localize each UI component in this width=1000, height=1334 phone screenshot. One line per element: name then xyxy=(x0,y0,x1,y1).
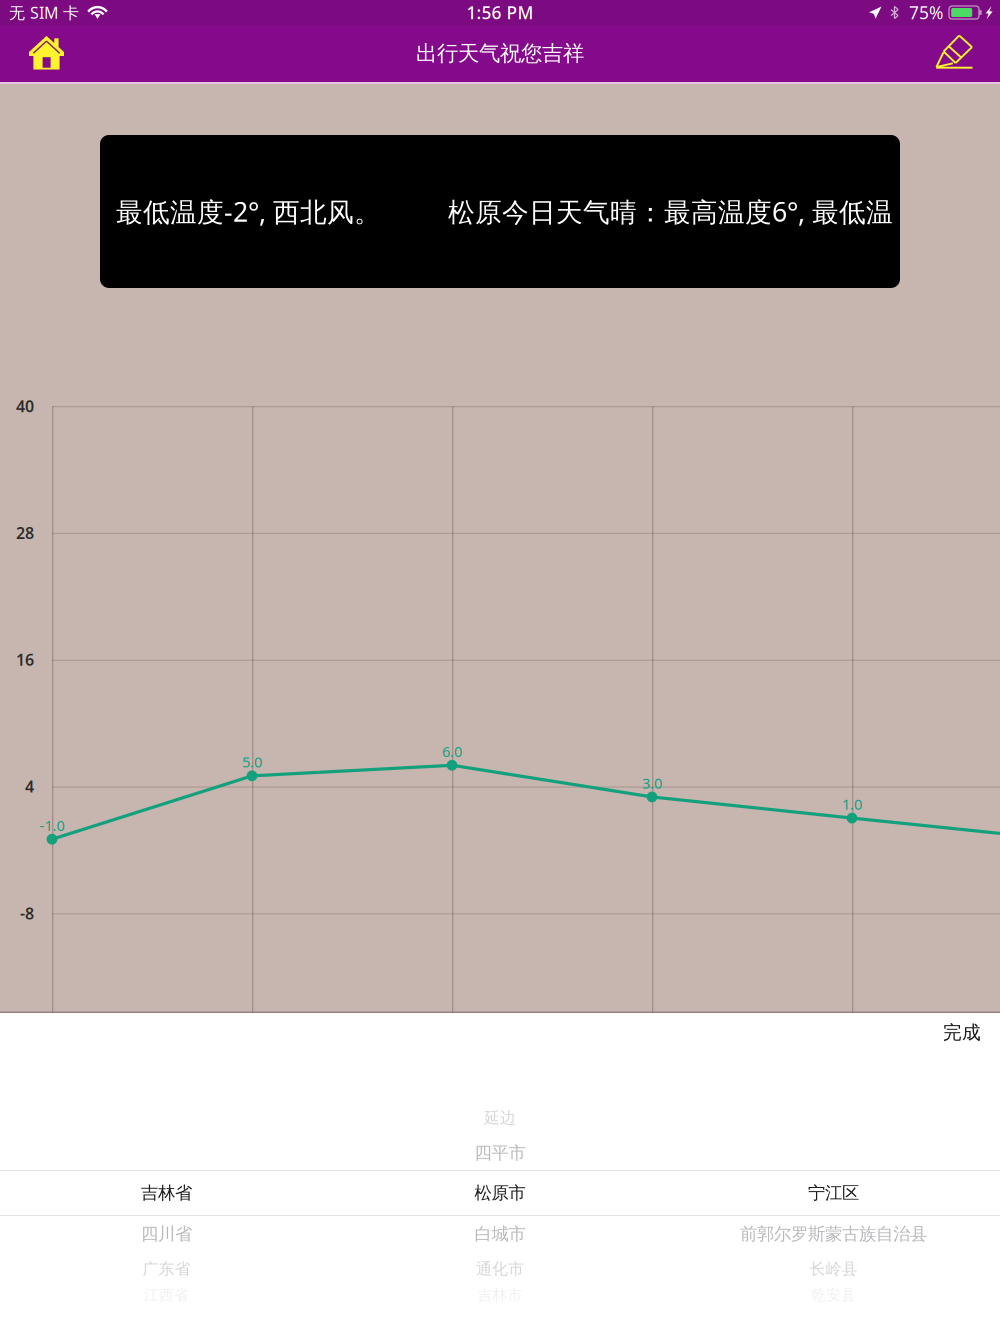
staticText: 无 SIM 卡 xyxy=(9,2,79,23)
staticText: 松原市 xyxy=(474,1182,525,1204)
staticText: 1.0 xyxy=(842,794,862,814)
staticText: 江西省 xyxy=(144,1286,189,1304)
staticText: 四川省 xyxy=(141,1223,192,1245)
staticText: 1:56 PM xyxy=(466,1,533,24)
staticText: 乾安县 xyxy=(811,1286,856,1304)
staticText: 完成 xyxy=(943,1021,981,1044)
staticText: 4 xyxy=(25,776,34,797)
staticText: 广东省 xyxy=(142,1259,190,1279)
staticText: 16 xyxy=(16,649,34,670)
staticText: 白城市 xyxy=(474,1223,525,1245)
staticText: 通化市 xyxy=(476,1259,524,1279)
staticText: 75% xyxy=(909,1,943,24)
staticText: 松原今日天气晴：最高温度6°, 最低温 xyxy=(448,194,893,229)
staticText: 吉林市 xyxy=(477,1286,522,1304)
staticText: 长岭县 xyxy=(809,1259,857,1279)
staticText: 5.0 xyxy=(242,752,262,772)
staticText: 6.0 xyxy=(442,741,462,761)
staticText: 出行天气祝您吉祥 xyxy=(416,40,584,67)
staticText: 40 xyxy=(16,395,34,417)
staticText: 四平市 xyxy=(474,1142,525,1164)
staticText: -8 xyxy=(20,903,34,924)
staticText: 宁江区 xyxy=(808,1182,859,1204)
staticText: 28 xyxy=(16,522,34,543)
button[interactable]: Edit xyxy=(922,28,999,78)
staticText: 延边 xyxy=(484,1108,516,1128)
button[interactable]: 完成 xyxy=(931,1012,993,1053)
staticText: 3.0 xyxy=(642,773,662,793)
button[interactable]: Home xyxy=(1,28,78,79)
staticText: 前郭尔罗斯蒙古族自治县 xyxy=(740,1223,927,1245)
staticText: -1.0 xyxy=(39,815,64,835)
staticText: 吉林省 xyxy=(141,1182,192,1204)
staticText: 最低温度-2°, 西北风。 xyxy=(116,194,381,229)
